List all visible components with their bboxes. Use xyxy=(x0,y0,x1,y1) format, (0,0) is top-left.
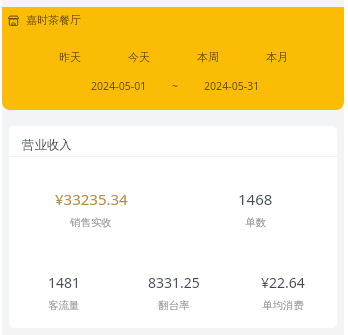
staticText: 单均消费 xyxy=(262,299,304,312)
staticText: 嘉时茶餐厅 xyxy=(26,13,81,27)
staticText: ~ xyxy=(172,79,179,93)
staticText: 本周 xyxy=(197,50,219,64)
staticText: 营业收入 xyxy=(22,137,72,153)
button[interactable]: 2024-05-01 xyxy=(6,78,344,94)
button[interactable]: 本周 xyxy=(173,49,242,64)
staticText: 1468 xyxy=(238,189,273,209)
staticText: 昨天 xyxy=(59,50,81,64)
button[interactable]: 本月 xyxy=(242,49,311,64)
button[interactable]: ¥33235.34 xyxy=(9,189,173,229)
staticText: 单数 xyxy=(245,216,266,229)
button[interactable]: 昨天 xyxy=(35,49,104,64)
staticText: 客流量 xyxy=(48,299,80,312)
staticText: 今天 xyxy=(128,50,150,64)
button[interactable]: ¥22.64 xyxy=(228,273,337,312)
button[interactable]: Store xyxy=(8,12,81,28)
staticText: 销售实收 xyxy=(70,216,112,229)
staticText: 2024-05-31 xyxy=(204,79,260,93)
button[interactable]: 1468 xyxy=(173,189,337,229)
button[interactable]: 今天 xyxy=(104,49,173,64)
staticText: ¥33235.34 xyxy=(55,189,128,209)
staticText: 2024-05-01 xyxy=(91,79,147,93)
other: Store xyxy=(8,15,19,26)
button[interactable]: 8331.25 xyxy=(119,273,228,312)
staticText: ¥22.64 xyxy=(261,273,305,292)
staticText: 1481 xyxy=(48,273,81,292)
staticText: 翻台率 xyxy=(158,299,190,312)
button[interactable]: 1481 xyxy=(9,273,119,312)
staticText: 本月 xyxy=(266,50,288,64)
staticText: 8331.25 xyxy=(148,273,200,292)
